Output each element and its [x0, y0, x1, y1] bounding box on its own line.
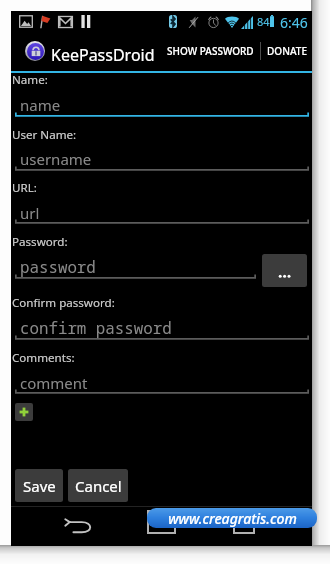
- button[interactable]: Cancel: [68, 469, 128, 502]
- button[interactable]: DONATE: [263, 31, 310, 70]
- staticText: name: [20, 95, 61, 115]
- button[interactable]: [17, 147, 309, 174]
- staticText: SHOW PASSWORD: [167, 44, 254, 58]
- staticText: User Name:: [12, 127, 77, 143]
- button[interactable]: Save: [15, 469, 63, 502]
- staticText: confirm password: [20, 317, 172, 339]
- button[interactable]: SHOW PASSWORD: [164, 31, 257, 70]
- button[interactable]: Add extra field: [15, 403, 33, 421]
- staticText: URL:: [12, 180, 37, 196]
- staticText: url: [20, 203, 40, 223]
- button[interactable]: [17, 315, 309, 342]
- staticText: Confirm password:: [12, 295, 115, 311]
- staticText: Cancel: [75, 476, 122, 496]
- staticText: password: [20, 256, 96, 278]
- button[interactable]: Recent apps: [233, 513, 255, 534]
- staticText: 6:46: [280, 13, 308, 32]
- button[interactable]: [17, 201, 309, 228]
- staticText: comment: [20, 373, 88, 393]
- button[interactable]: [17, 371, 309, 398]
- button[interactable]: [17, 254, 256, 281]
- staticText: Save: [23, 476, 56, 496]
- staticText: Name:: [12, 72, 48, 88]
- staticText: KeePassDroid: [51, 44, 155, 66]
- staticText: www.creagratis.com: [168, 509, 297, 528]
- staticText: Password:: [12, 234, 68, 250]
- button[interactable]: Back: [57, 508, 101, 544]
- staticText: username: [20, 149, 92, 169]
- button[interactable]: Generate password: [262, 254, 307, 287]
- staticText: 84: [257, 14, 270, 29]
- staticText: DONATE: [267, 44, 307, 58]
- staticText: Comments:: [12, 350, 75, 366]
- button[interactable]: Home: [147, 510, 176, 534]
- button[interactable]: [17, 93, 309, 120]
